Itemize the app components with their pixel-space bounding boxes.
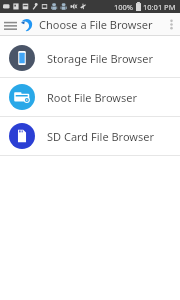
button[interactable]: Storage File Browser [0,39,180,77]
button[interactable]: More options [162,13,180,36]
staticText: Root File Browser [47,90,138,105]
button[interactable]: Root File Browser [0,78,180,116]
staticText: Storage File Browser [47,51,154,66]
button[interactable]: SD Card File Browser [0,117,180,155]
staticText: 10:01 PM [143,2,176,12]
staticText: SD Card File Browser [47,129,155,144]
staticText: 100% [114,2,134,12]
button[interactable]: Open navigation menu [0,13,20,36]
staticText: Choose a File Browser [39,17,153,32]
